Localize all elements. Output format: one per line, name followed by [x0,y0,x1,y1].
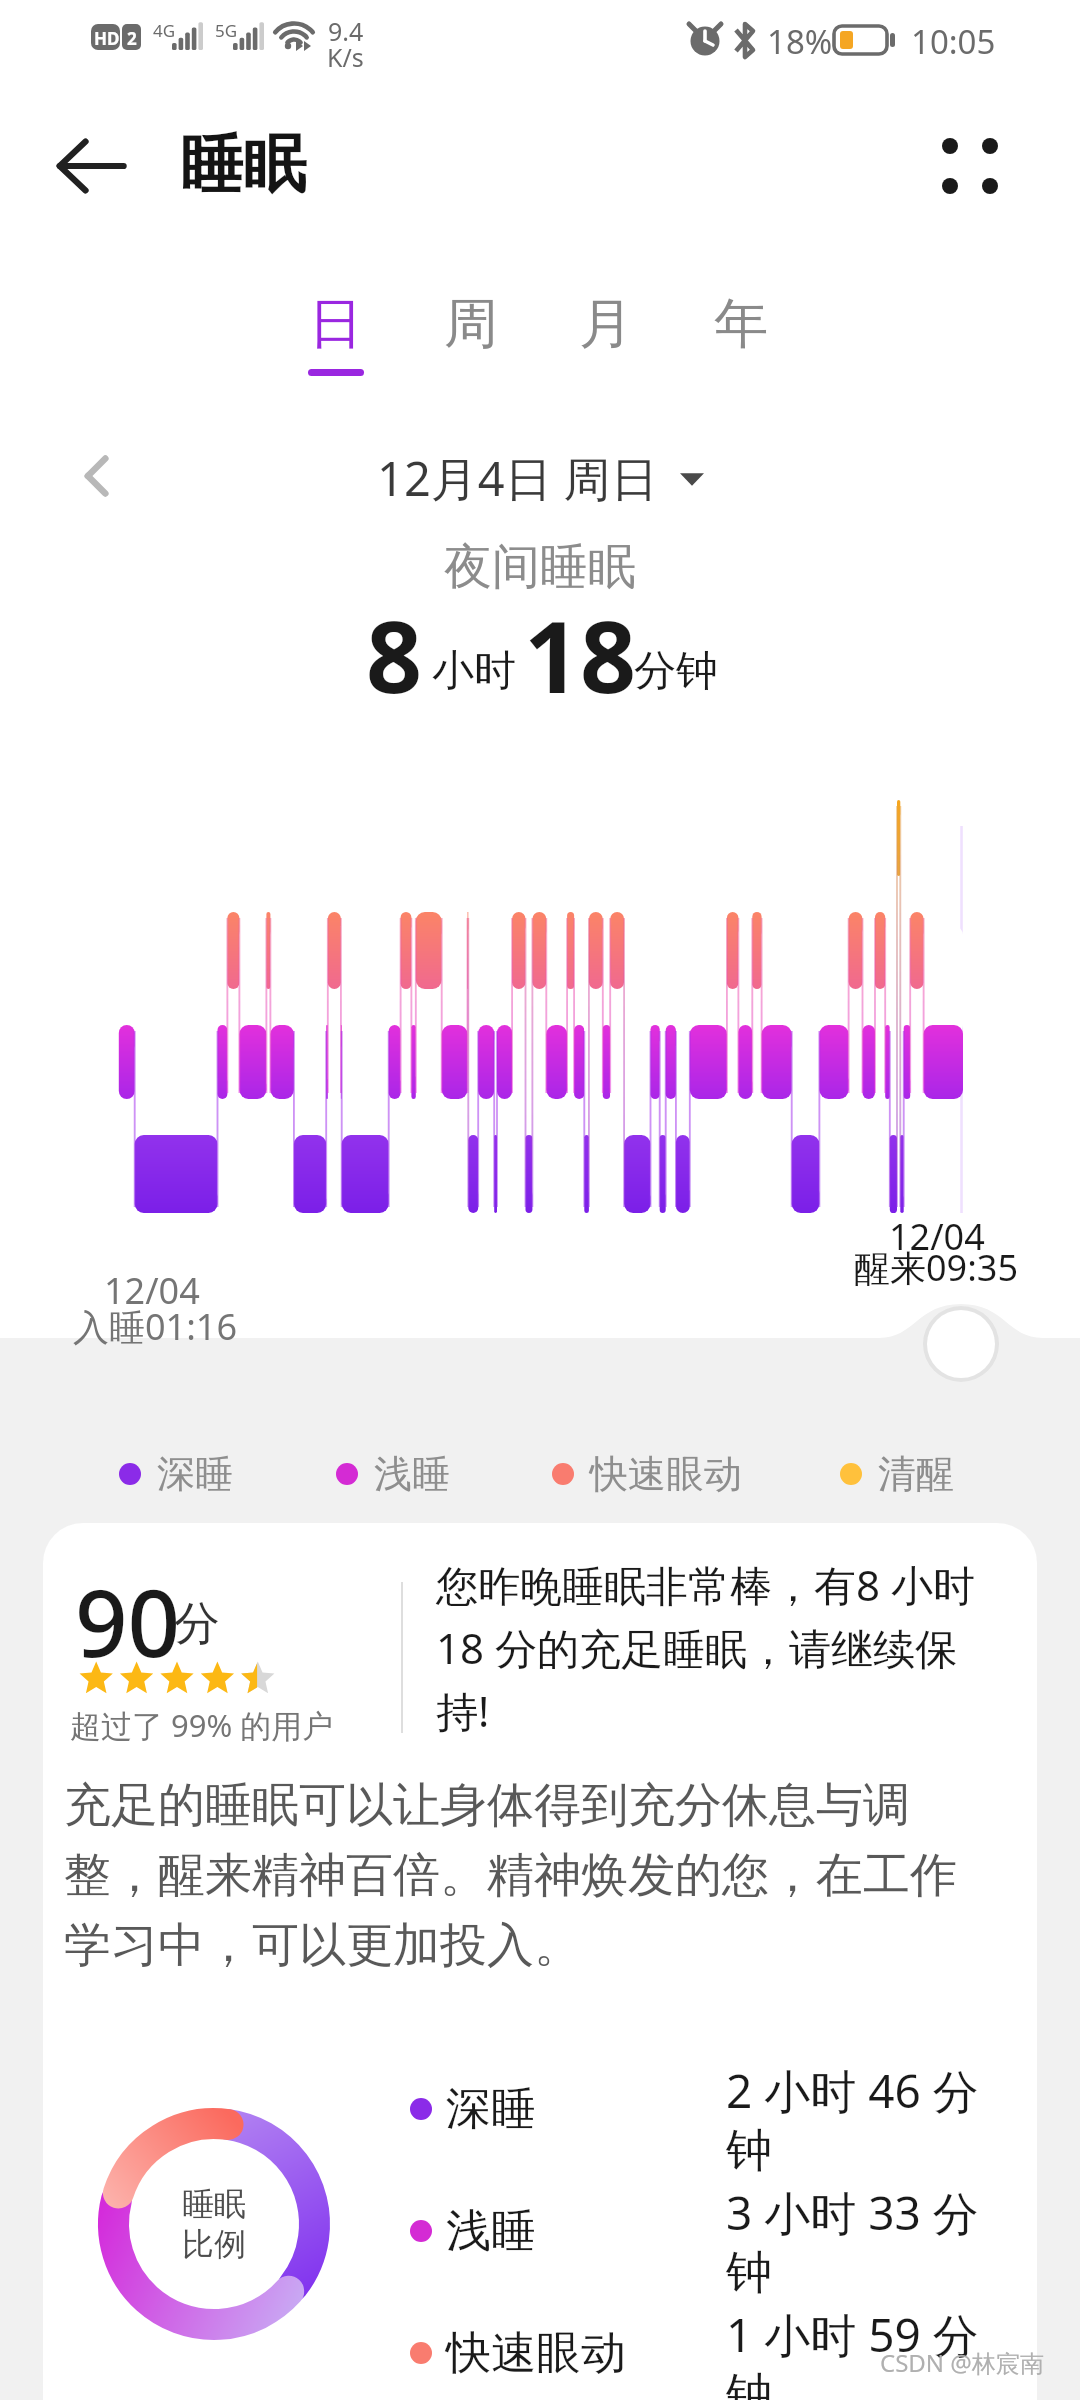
button[interactable]: Previous day [56,434,140,518]
staticText: 18 [524,588,637,721]
button[interactable]: 深睡 [119,1442,233,1506]
staticText: 分钟 [634,645,718,698]
staticText: 快速眼动 [590,1450,742,1498]
staticText: 钟 [726,2244,772,2302]
staticText: 3 小时 33 分 [726,2181,979,2244]
staticText: 深睡 [446,2081,708,2138]
button[interactable]: 快速眼动 [552,1442,742,1506]
staticText: 钟 [726,2122,772,2180]
button[interactable] [400,2299,970,2400]
staticText: 日 [309,290,363,358]
staticText: 超过了 99% 的用户 [70,1704,334,1746]
staticText: 10:05 [911,19,996,64]
staticText: HD [94,27,120,50]
staticText: 钟 [726,2366,772,2400]
button[interactable]: 清醒 [840,1442,954,1506]
staticText: 1 小时 59 分 [726,2303,979,2366]
staticText: 清醒 [878,1450,954,1498]
staticText: 4G [153,19,176,42]
staticText: 小时 [432,645,516,698]
staticText: 12/04 [104,1266,200,1315]
staticText: 浅睡 [446,2203,708,2260]
staticText: 睡眠 [182,2184,246,2224]
button[interactable]: Floating assistant [880,1290,1046,1400]
staticText: 比例 [182,2224,246,2264]
staticText: 18% [767,19,833,64]
staticText: 入睡01:16 [73,1302,238,1351]
staticText: CSDN @林宸南 [880,2346,1044,2379]
staticText: 醒来09:35 [854,1243,1019,1292]
staticText: 睡眠 [180,125,306,204]
button[interactable]: 周 [411,290,531,398]
staticText: 浅睡 [374,1450,450,1498]
button[interactable] [400,2177,970,2295]
staticText: 深睡 [157,1450,233,1498]
button[interactable]: 日 [276,290,396,398]
staticText: 12月4日 周日 [377,446,658,510]
staticText: 2 小时 46 分 [726,2059,979,2122]
staticText: 充足的睡眠可以让身体得到充分休息与调整，醒来精神百倍。精神焕发的您，在工作学习中… [64,1776,976,1975]
button[interactable]: Back [45,120,137,212]
button[interactable]: 浅睡 [336,1442,450,1506]
staticText: 您昨晚睡眠非常棒，有8 小时 18 分的充足睡眠，请继续保持! [436,1556,988,1739]
staticText: 9.4 [328,14,364,48]
staticText: 年 [714,290,768,358]
button[interactable]: 年 [681,290,801,398]
staticText: 周 [444,290,498,358]
staticText: 12/04 [889,1212,985,1261]
staticText: 5G [215,19,238,42]
staticText: 90 [75,1559,181,1684]
button[interactable]: 月 [546,290,666,398]
staticText: 分 [174,1595,220,1653]
button[interactable]: 12月4日 周日 [369,440,712,516]
staticText: 2 [127,27,137,50]
staticText: 快速眼动 [446,2325,708,2382]
button[interactable]: More options [924,120,1016,212]
staticText: 8 [366,588,423,721]
button[interactable] [400,2055,970,2173]
staticText: K/s [327,40,364,74]
staticText: 夜间睡眠 [444,537,636,597]
staticText: 月 [579,290,633,358]
